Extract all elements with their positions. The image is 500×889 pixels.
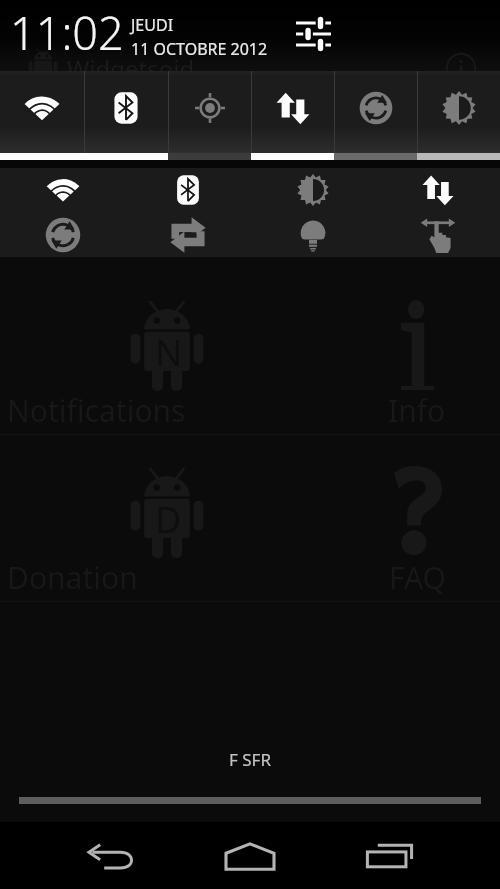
button[interactable]: Home bbox=[214, 830, 285, 882]
button[interactable]: Brightness bbox=[417, 71, 500, 160]
staticText: Info bbox=[388, 390, 446, 431]
button[interactable]: GPS bbox=[168, 71, 251, 160]
button[interactable]: Mobile data bbox=[251, 71, 334, 160]
staticText: F SFR bbox=[229, 748, 271, 771]
button[interactable]: Recent apps bbox=[354, 830, 425, 882]
button[interactable]: Auto rotate bbox=[334, 71, 417, 160]
button[interactable]: Wi-Fi bbox=[0, 168, 125, 212]
button[interactable]: Back bbox=[75, 830, 146, 882]
button[interactable]: Bluetooth bbox=[125, 168, 250, 212]
button[interactable]: Swap bbox=[125, 212, 250, 257]
button[interactable]: Gestures bbox=[375, 212, 500, 257]
staticText: 11 OCTOBRE 2012 bbox=[131, 38, 268, 60]
button[interactable]: Settings bbox=[288, 9, 338, 59]
staticText: FAQ bbox=[389, 557, 446, 598]
staticText: Notifications bbox=[7, 390, 186, 431]
staticText: Widgetsoid bbox=[67, 52, 195, 85]
button[interactable]: N bbox=[0, 268, 250, 434]
button[interactable]: Bluetooth bbox=[84, 71, 168, 160]
staticText: D bbox=[155, 495, 182, 544]
button[interactable]: Wi-Fi bbox=[0, 71, 84, 160]
button[interactable]: D bbox=[0, 435, 250, 601]
staticText: 11:02 bbox=[10, 2, 124, 63]
button[interactable]: Brightness bbox=[250, 168, 375, 212]
staticText: N bbox=[155, 328, 183, 377]
button[interactable]: Sync bbox=[0, 212, 125, 257]
staticText: JEUDI bbox=[131, 14, 174, 36]
button[interactable]: Flashlight bbox=[250, 212, 375, 257]
staticText: Donation bbox=[7, 557, 138, 598]
button[interactable]: FAQ bbox=[250, 435, 500, 601]
button[interactable]: Mobile data bbox=[375, 168, 500, 212]
